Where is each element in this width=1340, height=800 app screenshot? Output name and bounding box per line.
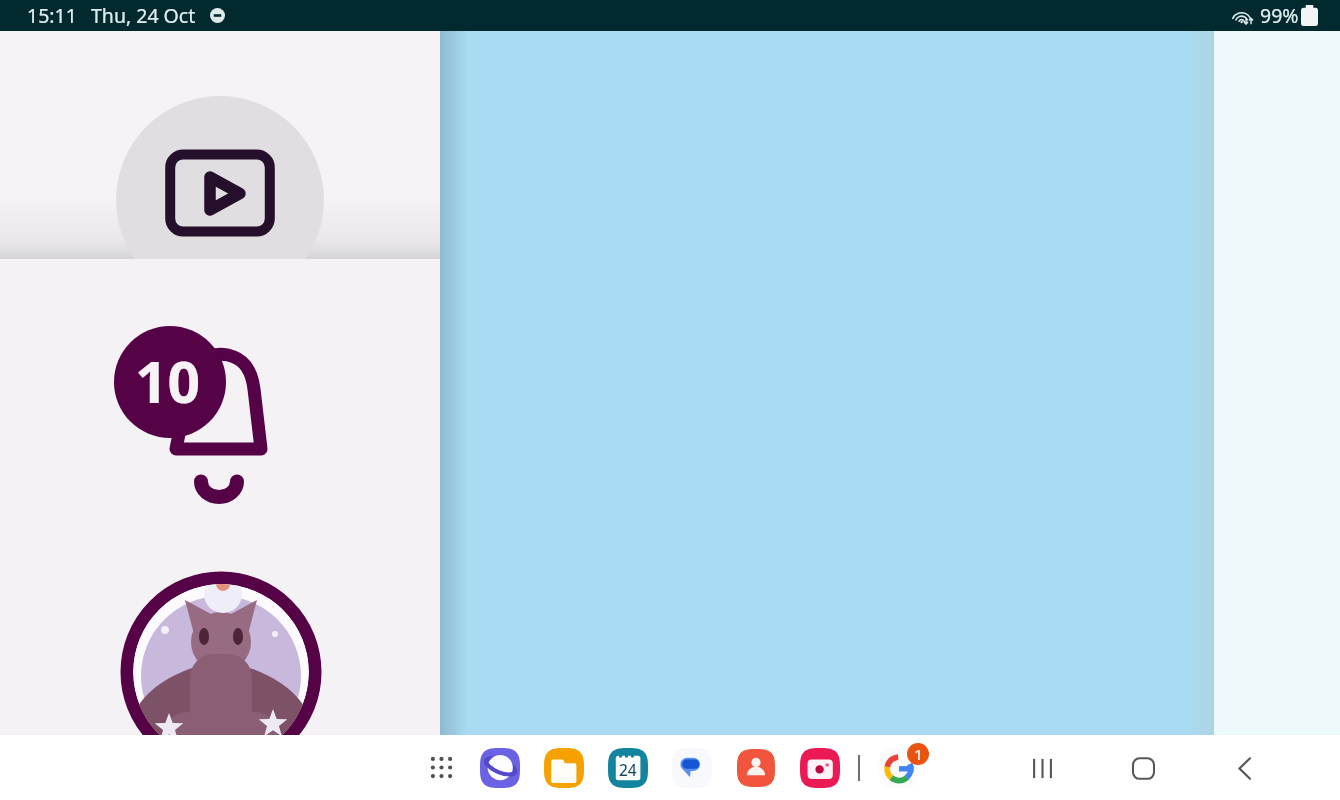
button[interactable]: Home (1120, 745, 1166, 791)
staticText: 99% (1260, 2, 1299, 29)
button[interactable]: Back (1221, 745, 1267, 791)
button[interactable]: Calendar (606, 746, 650, 790)
button[interactable]: Google (877, 746, 921, 790)
staticText: 15:11 (27, 2, 77, 29)
button[interactable]: Internet (478, 746, 522, 790)
button[interactable]: Camera (798, 746, 842, 790)
staticText: Thu, 24 Oct (91, 2, 196, 29)
staticText: 10 (135, 342, 201, 420)
button[interactable]: My Files (542, 746, 586, 790)
button[interactable]: Apps (419, 745, 464, 790)
button[interactable]: Messages (670, 746, 714, 790)
button[interactable]: Contacts (734, 746, 778, 790)
staticText: 1 (914, 744, 923, 764)
staticText: 24 (619, 759, 637, 780)
button[interactable]: Recents (1019, 745, 1065, 791)
